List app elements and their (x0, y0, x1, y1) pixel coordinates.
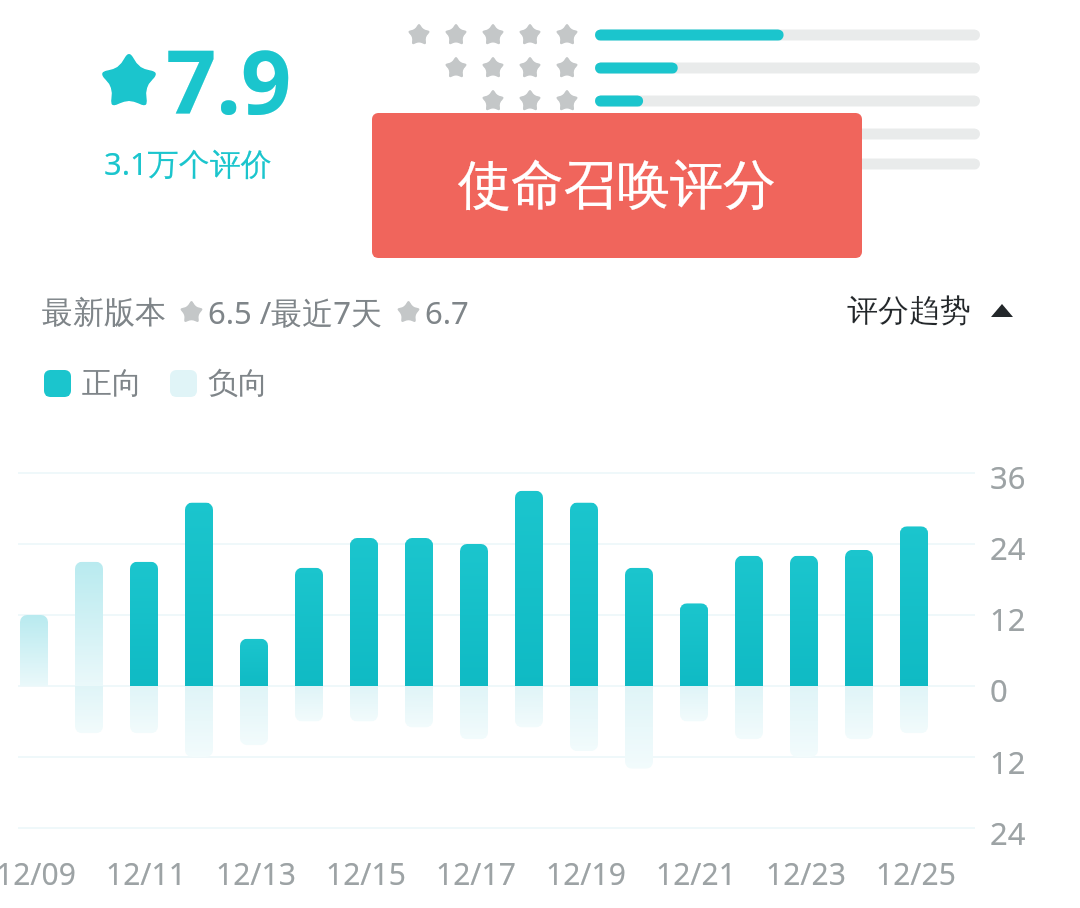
staticText: 12 (990, 598, 1026, 640)
staticText: 12/21 (656, 853, 736, 894)
staticText: 12/09 (0, 853, 76, 894)
staticText: 12 (990, 741, 1026, 783)
staticText: 评分趋势 (847, 291, 971, 330)
staticText: 负向 (208, 364, 268, 402)
staticText: 24 (990, 527, 1026, 569)
staticText: 7.9 (166, 20, 292, 140)
staticText: 12/15 (326, 853, 406, 894)
staticText: 6.7 (425, 291, 469, 333)
staticText: 36 (990, 456, 1026, 498)
staticText: 12/19 (546, 853, 626, 894)
staticText: 12/25 (876, 853, 956, 894)
staticText: 使命召唤评分 (458, 152, 776, 219)
button[interactable]: 使命召唤评分 (372, 113, 862, 258)
staticText: 最新版本 (42, 293, 166, 332)
button[interactable]: 评分趋势 (847, 291, 1013, 330)
other: Collapse rating trend (991, 304, 1013, 317)
staticText: 12/11 (106, 853, 186, 894)
staticText: 正向 (82, 364, 142, 402)
staticText: 12/23 (766, 853, 846, 894)
staticText: 0 (990, 669, 1008, 711)
staticText: 24 (990, 812, 1026, 854)
staticText: 3.1万个评价 (104, 142, 272, 184)
staticText: 6.5 /最近7天 (208, 291, 383, 333)
staticText: 12/17 (436, 853, 516, 894)
staticText: 12/13 (216, 853, 296, 894)
